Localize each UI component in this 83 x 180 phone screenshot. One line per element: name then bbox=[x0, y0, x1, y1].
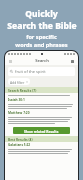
staticText: Show related Results bbox=[24, 129, 59, 133]
button[interactable]: Show related Results bbox=[13, 127, 70, 134]
button[interactable]: Search Results (7) bbox=[5, 87, 78, 93]
staticText: Quickly bbox=[25, 8, 58, 20]
staticText: Search Results (7) bbox=[8, 88, 37, 92]
staticText: Best Results (4) bbox=[8, 137, 33, 141]
button[interactable]: Matthew 7:20 bbox=[5, 110, 78, 125]
staticText: words and phrases bbox=[15, 41, 68, 49]
button[interactable]: Menu bbox=[8, 59, 13, 64]
button[interactable]: Settings bbox=[70, 59, 75, 64]
button[interactable]: Add filter bbox=[8, 78, 30, 85]
staticText: Galatians 5:22 bbox=[8, 143, 31, 147]
staticText: Add filter bbox=[10, 80, 25, 84]
button[interactable]: Best Results (4) bbox=[5, 136, 78, 142]
button[interactable]: Isaiah 30:1 bbox=[5, 97, 78, 110]
staticText: Search bbox=[35, 58, 49, 64]
staticText: Matthew 7:20 bbox=[8, 111, 30, 115]
staticText: Search the Bible bbox=[7, 20, 77, 32]
button[interactable]: Galatians 5:22 bbox=[5, 142, 78, 155]
staticText: Isaiah 30:1 bbox=[8, 98, 25, 102]
button[interactable]: fruit of the spirit bbox=[8, 67, 75, 76]
staticText: for specific bbox=[26, 33, 57, 41]
staticText: fruit of the spirit bbox=[15, 69, 46, 74]
